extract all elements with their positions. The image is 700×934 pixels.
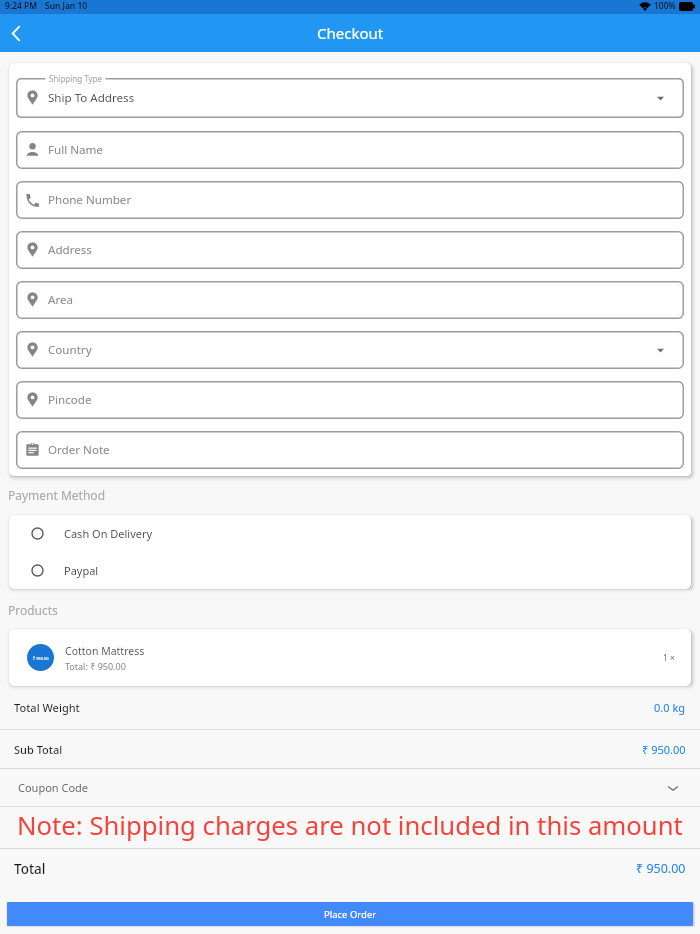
staticText: Cotton Mattress [65,644,145,658]
staticText: Sub Total [14,742,63,757]
staticText: Area [48,292,74,308]
staticText: Checkout [317,23,384,43]
button[interactable]: Paypal [9,552,691,589]
staticText: 100% [654,0,676,12]
button[interactable]: Country [16,331,684,369]
button[interactable]: Full Name [16,131,684,169]
staticText: Pincode [48,392,92,408]
staticText: 1 × [663,652,675,664]
button[interactable]: Place Order [7,902,693,926]
button[interactable]: Ship To Address [16,78,684,118]
button[interactable]: Area [16,281,684,319]
staticText: Total Weight [14,700,80,715]
staticText: ₹ 950.00 [33,656,49,661]
button[interactable]: Coupon Code [0,769,700,806]
button[interactable]: Address [16,231,684,269]
staticText: Place Order [324,908,377,921]
staticText: Payment Method [8,487,106,503]
staticText: Ship To Address [48,90,135,106]
staticText: Order Note [48,442,110,458]
staticText: Paypal [64,563,99,578]
staticText: ₹ 950.00 [636,860,686,877]
staticText: Total: ₹ 950.00 [65,660,126,672]
staticText: Shipping Type [49,73,103,84]
staticText: Country [48,342,92,358]
staticText: Total [14,860,46,878]
staticText: Full Name [48,142,103,158]
staticText: ₹ 950.00 [642,742,686,757]
staticText: Cash On Delivery [64,526,153,541]
button[interactable]: Back [2,19,30,47]
staticText: Sun Jan 10 [45,0,88,12]
staticText: 0.0 kg [654,700,686,715]
staticText: Phone Number [48,192,132,208]
button[interactable]: ₹ 950.00 [9,629,691,686]
button[interactable]: Order Note [16,431,684,469]
staticText: Coupon Code [18,780,89,795]
button[interactable]: Cash On Delivery [9,515,691,552]
staticText: Address [48,242,92,258]
staticText: Products [8,602,58,618]
button[interactable]: Pincode [16,381,684,419]
button[interactable]: Phone Number [16,181,684,219]
staticText: 9:24 PM [5,0,38,12]
staticText: Note: Shipping charges are not included … [17,808,683,843]
